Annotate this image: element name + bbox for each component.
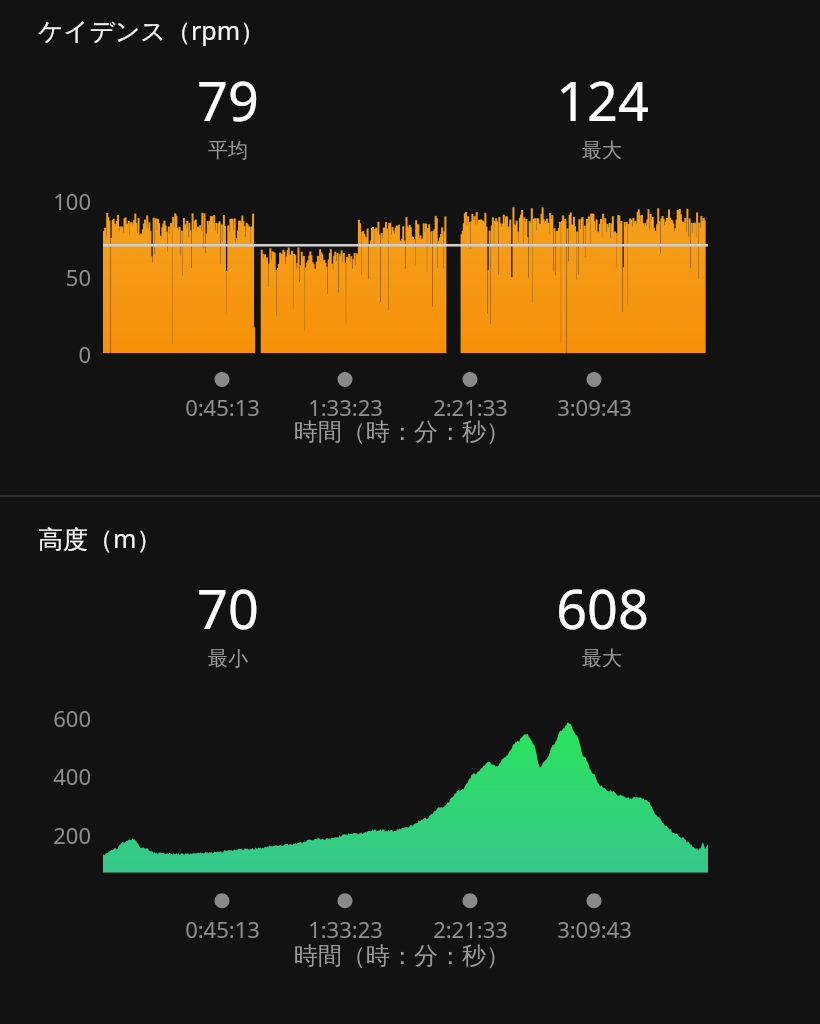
staticText: 400 — [53, 761, 91, 791]
staticText: 50 — [65, 262, 91, 292]
staticText: 1:33:23 — [308, 392, 383, 422]
staticText: 3:09:43 — [557, 392, 632, 422]
staticText: 200 — [53, 820, 91, 850]
staticText: 高度（m） — [38, 521, 162, 555]
staticText: 124 — [556, 63, 649, 137]
staticText: 2:21:33 — [433, 914, 508, 944]
staticText: 0:45:13 — [185, 914, 260, 944]
staticText: 600 — [53, 703, 91, 733]
staticText: 100 — [53, 186, 91, 216]
staticText: 2:21:33 — [433, 392, 508, 422]
staticText: 0 — [78, 339, 91, 369]
staticText: 平均 — [208, 138, 248, 163]
staticText: 0:45:13 — [185, 392, 260, 422]
staticText: 最大 — [582, 138, 622, 163]
staticText: 608 — [556, 571, 649, 645]
staticText: 時間（時：分：秒） — [294, 417, 510, 447]
button[interactable]: 高度（m） — [0, 497, 820, 1024]
staticText: 3:09:43 — [557, 914, 632, 944]
staticText: 時間（時：分：秒） — [294, 941, 510, 971]
staticText: 最小 — [208, 646, 248, 671]
button[interactable]: ケイデンス（rpm） — [0, 0, 820, 495]
staticText: 70 — [197, 571, 259, 645]
staticText: ケイデンス（rpm） — [38, 13, 266, 47]
staticText: 79 — [197, 63, 259, 137]
staticText: 最大 — [582, 646, 622, 671]
staticText: 1:33:23 — [308, 914, 383, 944]
